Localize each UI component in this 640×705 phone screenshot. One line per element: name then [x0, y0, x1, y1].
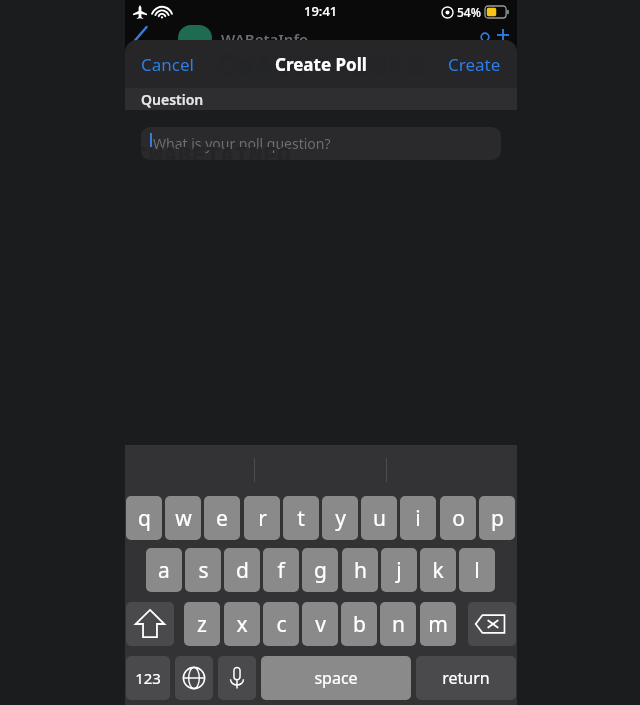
staticText: x	[236, 610, 248, 639]
button[interactable]: Switch keyboard	[175, 656, 213, 700]
button[interactable]: p	[479, 496, 515, 540]
button[interactable]: o	[440, 496, 476, 540]
staticText: k	[432, 556, 444, 585]
button[interactable]: i	[400, 496, 436, 540]
button[interactable]: b	[341, 602, 377, 646]
button[interactable]: r	[244, 496, 280, 540]
staticText: y	[335, 504, 346, 533]
button[interactable]: z	[184, 602, 220, 646]
button[interactable]: Backspace	[468, 602, 516, 646]
button[interactable]: g	[302, 548, 338, 592]
staticText: 123	[135, 668, 161, 688]
staticText: f	[277, 556, 285, 585]
staticText: return	[442, 667, 490, 689]
staticText: u	[373, 504, 386, 533]
button[interactable]: w	[165, 496, 201, 540]
button[interactable]: q	[126, 496, 162, 540]
button[interactable]: Create	[432, 43, 517, 86]
button[interactable]: n	[380, 602, 416, 646]
button[interactable]: a	[146, 548, 182, 592]
staticText: 54%	[457, 4, 481, 20]
button[interactable]: y	[322, 496, 358, 540]
staticText: 19:41	[304, 2, 338, 20]
staticText: n	[392, 610, 405, 639]
staticText: m	[428, 610, 448, 639]
staticText: a	[158, 556, 170, 585]
button[interactable]: h	[342, 548, 378, 592]
button[interactable]: d	[224, 548, 260, 592]
button[interactable]: Cancel	[125, 43, 210, 86]
staticText: z	[197, 610, 207, 639]
staticText: p	[491, 504, 504, 533]
staticText: Cancel	[141, 53, 194, 76]
staticText: r	[258, 504, 267, 533]
staticText: Question	[141, 90, 204, 109]
staticText: w	[175, 504, 192, 533]
button[interactable]: return	[416, 656, 516, 700]
button[interactable]: space	[261, 656, 411, 700]
staticText: h	[354, 556, 367, 585]
staticText: q	[138, 504, 151, 533]
staticText: e	[216, 504, 228, 533]
button[interactable]: v	[302, 602, 338, 646]
button[interactable]: l	[459, 548, 495, 592]
staticText: b	[353, 610, 366, 639]
button[interactable]: e	[204, 496, 240, 540]
staticText: j	[396, 556, 402, 585]
button[interactable]: t	[283, 496, 319, 540]
staticText: space	[314, 667, 358, 689]
staticText: o	[452, 504, 465, 533]
staticText: WABetaInfo	[221, 29, 309, 49]
button[interactable]: m	[420, 602, 456, 646]
staticText: c	[276, 610, 287, 639]
button[interactable]: j	[381, 548, 417, 592]
button[interactable]: c	[263, 602, 299, 646]
button[interactable]: x	[224, 602, 260, 646]
button[interactable]: What is your poll question?	[141, 127, 501, 160]
staticText: Create	[448, 53, 501, 76]
staticText: v	[315, 610, 326, 639]
button[interactable]: u	[361, 496, 397, 540]
button[interactable]: f	[263, 548, 299, 592]
staticText: CWABETAINFO	[141, 139, 292, 160]
staticText: i	[415, 504, 421, 533]
button[interactable]: 123	[126, 656, 170, 700]
button[interactable]: Dictate	[218, 656, 256, 700]
button[interactable]: s	[185, 548, 221, 592]
staticText: s	[198, 556, 209, 585]
staticText: l	[474, 556, 480, 585]
staticText: t	[297, 504, 305, 533]
staticText: CWABETAINFO	[217, 44, 426, 85]
staticText: d	[236, 556, 249, 585]
staticText: Create Poll	[275, 53, 367, 76]
staticText: g	[314, 556, 327, 585]
staticText: What is your poll question?	[153, 134, 331, 153]
button[interactable]: k	[420, 548, 456, 592]
button[interactable]: Shift	[126, 602, 174, 646]
